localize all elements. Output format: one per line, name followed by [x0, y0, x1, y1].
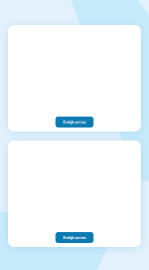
button[interactable]: Bekijk acties	[55, 117, 93, 127]
staticText: Bekijk acties	[63, 119, 86, 125]
staticText: Bekijk acties	[63, 235, 86, 240]
button[interactable]: Bekijk acties	[55, 232, 93, 243]
